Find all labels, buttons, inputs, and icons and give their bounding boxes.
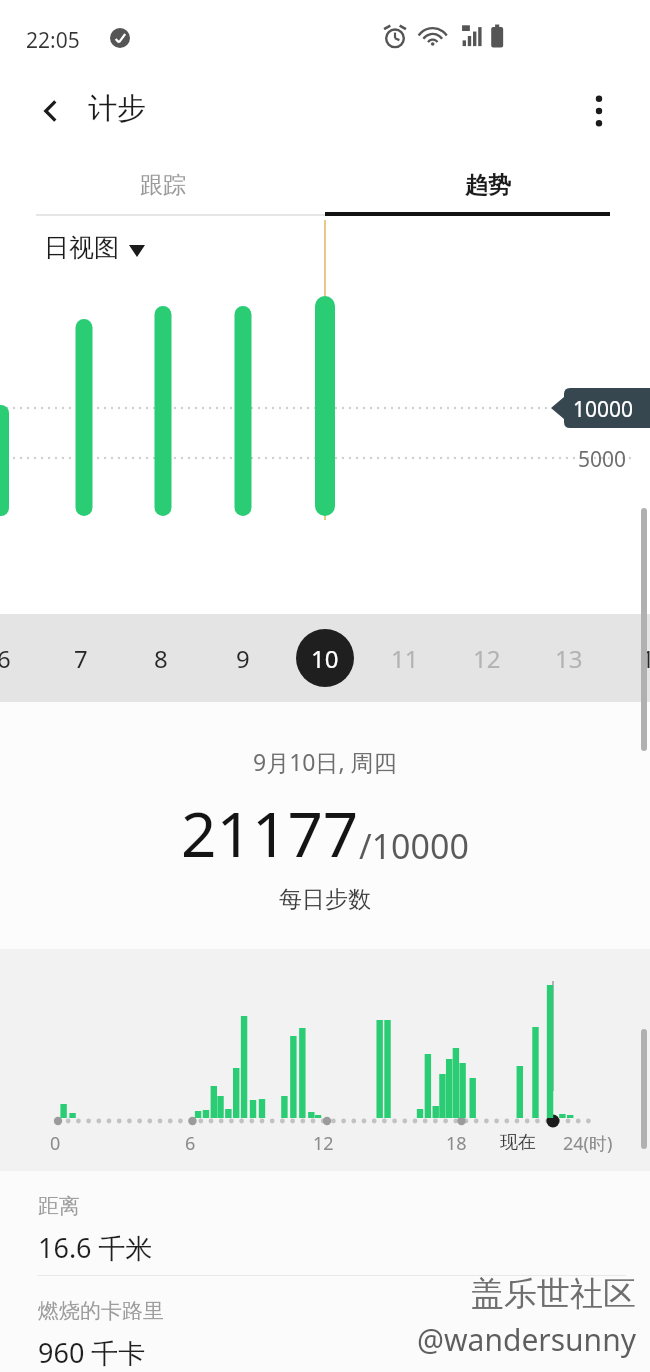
- staticText: 13: [555, 642, 583, 675]
- button[interactable]: 距离: [0, 1171, 650, 1275]
- button[interactable]: 日视图: [44, 232, 145, 263]
- staticText: 跟踪: [140, 171, 186, 200]
- staticText: 7: [74, 642, 88, 675]
- staticText: 燃烧的卡路里: [38, 1298, 164, 1324]
- staticText: 21177: [181, 791, 359, 875]
- staticText: 日视图: [44, 232, 119, 263]
- staticText: 5000: [578, 445, 627, 474]
- staticText: 6: [185, 1131, 196, 1156]
- staticText: 趋势: [465, 171, 511, 200]
- button[interactable]: 8: [131, 628, 191, 688]
- staticText: 960 千卡: [38, 1334, 146, 1371]
- staticText: 12: [313, 1131, 334, 1156]
- staticText: 8: [154, 642, 168, 675]
- staticText: @wandersunny: [417, 1319, 636, 1360]
- staticText: 12: [473, 642, 501, 675]
- staticText: 盖乐世社区: [471, 1273, 636, 1315]
- staticText: 18: [446, 1131, 467, 1156]
- button[interactable]: 11: [375, 628, 435, 688]
- button[interactable]: More options: [568, 80, 630, 142]
- button[interactable]: Back: [20, 80, 82, 142]
- button[interactable]: 9: [213, 628, 273, 688]
- staticText: 22:05: [26, 26, 80, 55]
- staticText: 1: [641, 642, 650, 675]
- staticText: 16.6 千米: [38, 1229, 153, 1266]
- staticText: 11: [391, 642, 419, 675]
- button[interactable]: 跟踪: [0, 154, 325, 216]
- staticText: 9: [236, 642, 250, 675]
- staticText: 每日步数: [279, 885, 371, 914]
- staticText: 距离: [38, 1193, 80, 1219]
- staticText: 6: [0, 642, 11, 675]
- staticText: /10000: [359, 823, 469, 869]
- button[interactable]: 趋势: [325, 154, 650, 216]
- staticText: 现在: [500, 1131, 536, 1154]
- button[interactable]: 1: [618, 628, 650, 688]
- staticText: 9月10日, 周四: [253, 746, 397, 777]
- staticText: 10000: [573, 395, 634, 424]
- button[interactable]: 12: [457, 628, 517, 688]
- button[interactable]: 10: [295, 628, 355, 688]
- staticText: 24(时): [563, 1131, 613, 1156]
- staticText: 0: [50, 1131, 61, 1156]
- button[interactable]: 6: [0, 628, 34, 688]
- button[interactable]: 7: [51, 628, 111, 688]
- button[interactable]: 13: [539, 628, 599, 688]
- button[interactable]: 燃烧的卡路里: [0, 1276, 650, 1372]
- staticText: 计步: [88, 90, 146, 127]
- staticText: 10: [311, 642, 339, 675]
